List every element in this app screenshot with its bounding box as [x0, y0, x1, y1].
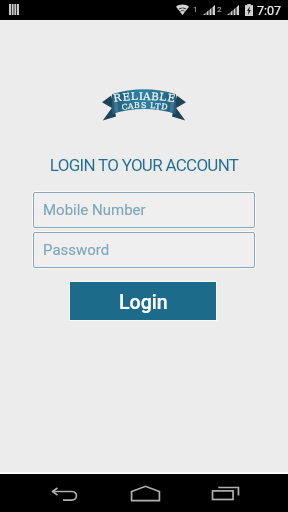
staticText: Login — [119, 291, 168, 314]
staticText: Password — [43, 241, 110, 259]
button[interactable]: Back — [28, 474, 100, 512]
button[interactable]: Mobile Number — [32, 191, 256, 229]
button[interactable]: Password — [32, 231, 256, 269]
staticText: 1 — [193, 5, 198, 14]
staticText: LOGIN TO YOUR ACCOUNT — [0, 155, 288, 175]
button[interactable]: Recent apps — [189, 474, 261, 512]
staticText: 2 — [217, 5, 222, 14]
staticText: Mobile Number — [43, 201, 146, 219]
button[interactable]: Login — [69, 281, 217, 321]
staticText: 7:07 — [257, 3, 282, 18]
button[interactable]: Home — [109, 474, 181, 512]
